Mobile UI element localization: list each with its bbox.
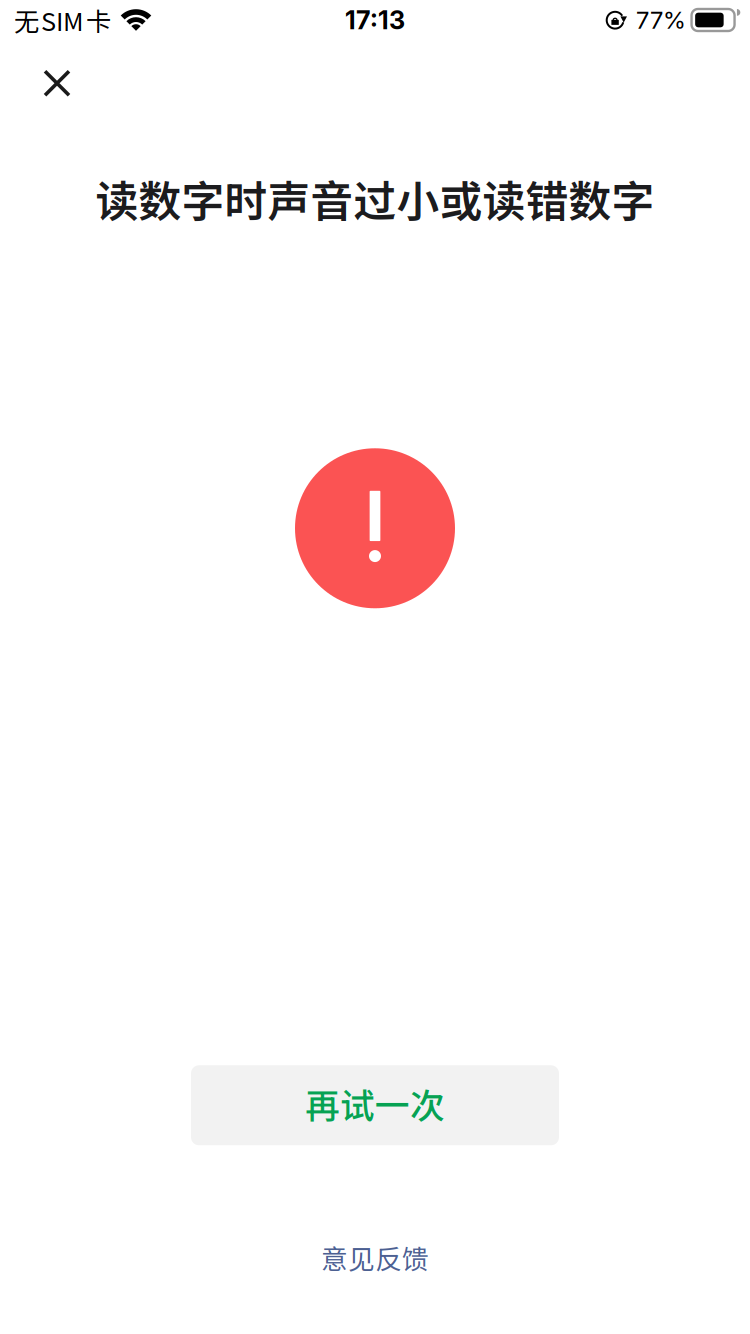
button[interactable]: 意见反馈	[291, 1237, 459, 1281]
staticText: 意见反馈	[321, 1238, 429, 1277]
staticText: 17:13	[345, 5, 405, 35]
button[interactable]: Close	[13, 40, 101, 126]
staticText: 读数字时声音过小或读错数字	[95, 167, 654, 229]
staticText: 无 SIM 卡	[14, 2, 111, 38]
button[interactable]: 再试一次	[191, 1065, 559, 1145]
staticText: 再试一次	[305, 1078, 445, 1128]
staticText: 77%	[636, 5, 686, 34]
